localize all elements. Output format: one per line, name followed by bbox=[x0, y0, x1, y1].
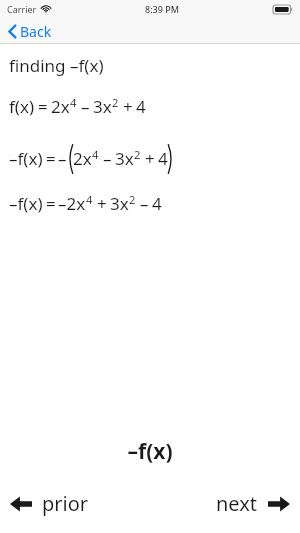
staticText: 4 bbox=[86, 192, 93, 207]
staticText: 4 bbox=[92, 147, 99, 162]
button[interactable]: prior bbox=[6, 484, 93, 523]
staticText: 4 bbox=[70, 95, 77, 110]
staticText: Back bbox=[20, 22, 52, 41]
staticText: 3x bbox=[110, 192, 129, 215]
staticText: – bbox=[58, 147, 67, 170]
staticText: = bbox=[46, 192, 56, 215]
staticText: –f(x) bbox=[127, 437, 173, 466]
staticText: – bbox=[103, 147, 112, 170]
staticText: 2 bbox=[112, 95, 119, 110]
staticText: finding –f(x) bbox=[9, 54, 104, 77]
staticText: – bbox=[81, 95, 90, 118]
staticText: 2x bbox=[73, 147, 92, 170]
staticText: 3x bbox=[93, 95, 112, 118]
staticText: 4 bbox=[136, 95, 146, 118]
staticText: 8:39 PM bbox=[145, 3, 179, 15]
staticText: 2x bbox=[51, 95, 70, 118]
button[interactable]: Back bbox=[6, 19, 54, 44]
staticText: –2x bbox=[58, 192, 86, 215]
staticText: + bbox=[97, 192, 107, 215]
staticText: 4 bbox=[152, 192, 162, 215]
staticText: –f(x) bbox=[9, 192, 43, 215]
staticText: 4 bbox=[158, 147, 168, 170]
staticText: + bbox=[123, 95, 133, 118]
staticText: –f(x) bbox=[9, 147, 43, 170]
staticText: Carrier bbox=[7, 3, 37, 15]
staticText: 2 bbox=[129, 192, 136, 207]
staticText: 3x bbox=[115, 147, 134, 170]
staticText: = bbox=[46, 147, 56, 170]
button[interactable]: next bbox=[212, 484, 294, 523]
staticText: = bbox=[38, 95, 48, 118]
staticText: next bbox=[216, 490, 258, 517]
staticText: 2 bbox=[134, 147, 141, 162]
staticText: + bbox=[145, 147, 155, 170]
staticText: f(x) bbox=[9, 95, 35, 118]
staticText: prior bbox=[42, 490, 89, 517]
staticText: – bbox=[140, 192, 149, 215]
